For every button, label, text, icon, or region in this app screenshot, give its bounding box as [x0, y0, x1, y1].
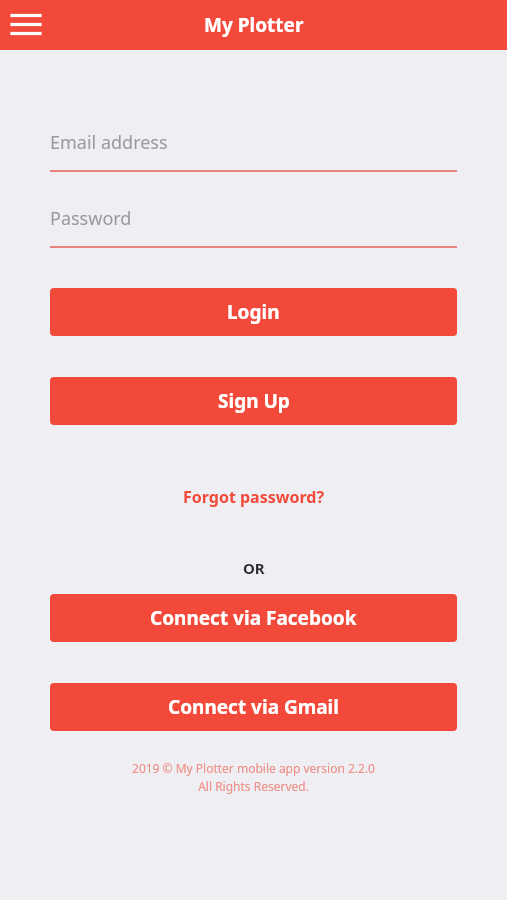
button[interactable]: Connect via Facebook — [50, 594, 457, 642]
staticText: Sign Up — [218, 388, 290, 414]
staticText: Connect via Facebook — [150, 605, 357, 631]
staticText: OR — [243, 558, 265, 578]
staticText: My Plotter — [204, 12, 304, 38]
staticText: 2019 © My Plotter mobile app version 2.2… — [132, 760, 375, 776]
button[interactable]: Connect via Gmail — [50, 683, 457, 731]
staticText: Login — [227, 299, 280, 325]
staticText: Forgot password? — [183, 486, 325, 508]
button[interactable]: Forgot password? — [0, 482, 507, 512]
staticText: Email address — [50, 130, 168, 155]
staticText: Connect via Gmail — [168, 694, 339, 720]
button[interactable]: Sign Up — [50, 377, 457, 425]
button[interactable]: Open navigation menu — [4, 7, 48, 43]
button[interactable]: Password — [50, 198, 457, 248]
staticText: All Rights Reserved. — [198, 778, 309, 794]
button[interactable]: Login — [50, 288, 457, 336]
button[interactable]: Email address — [50, 122, 457, 172]
staticText: Password — [50, 206, 132, 231]
